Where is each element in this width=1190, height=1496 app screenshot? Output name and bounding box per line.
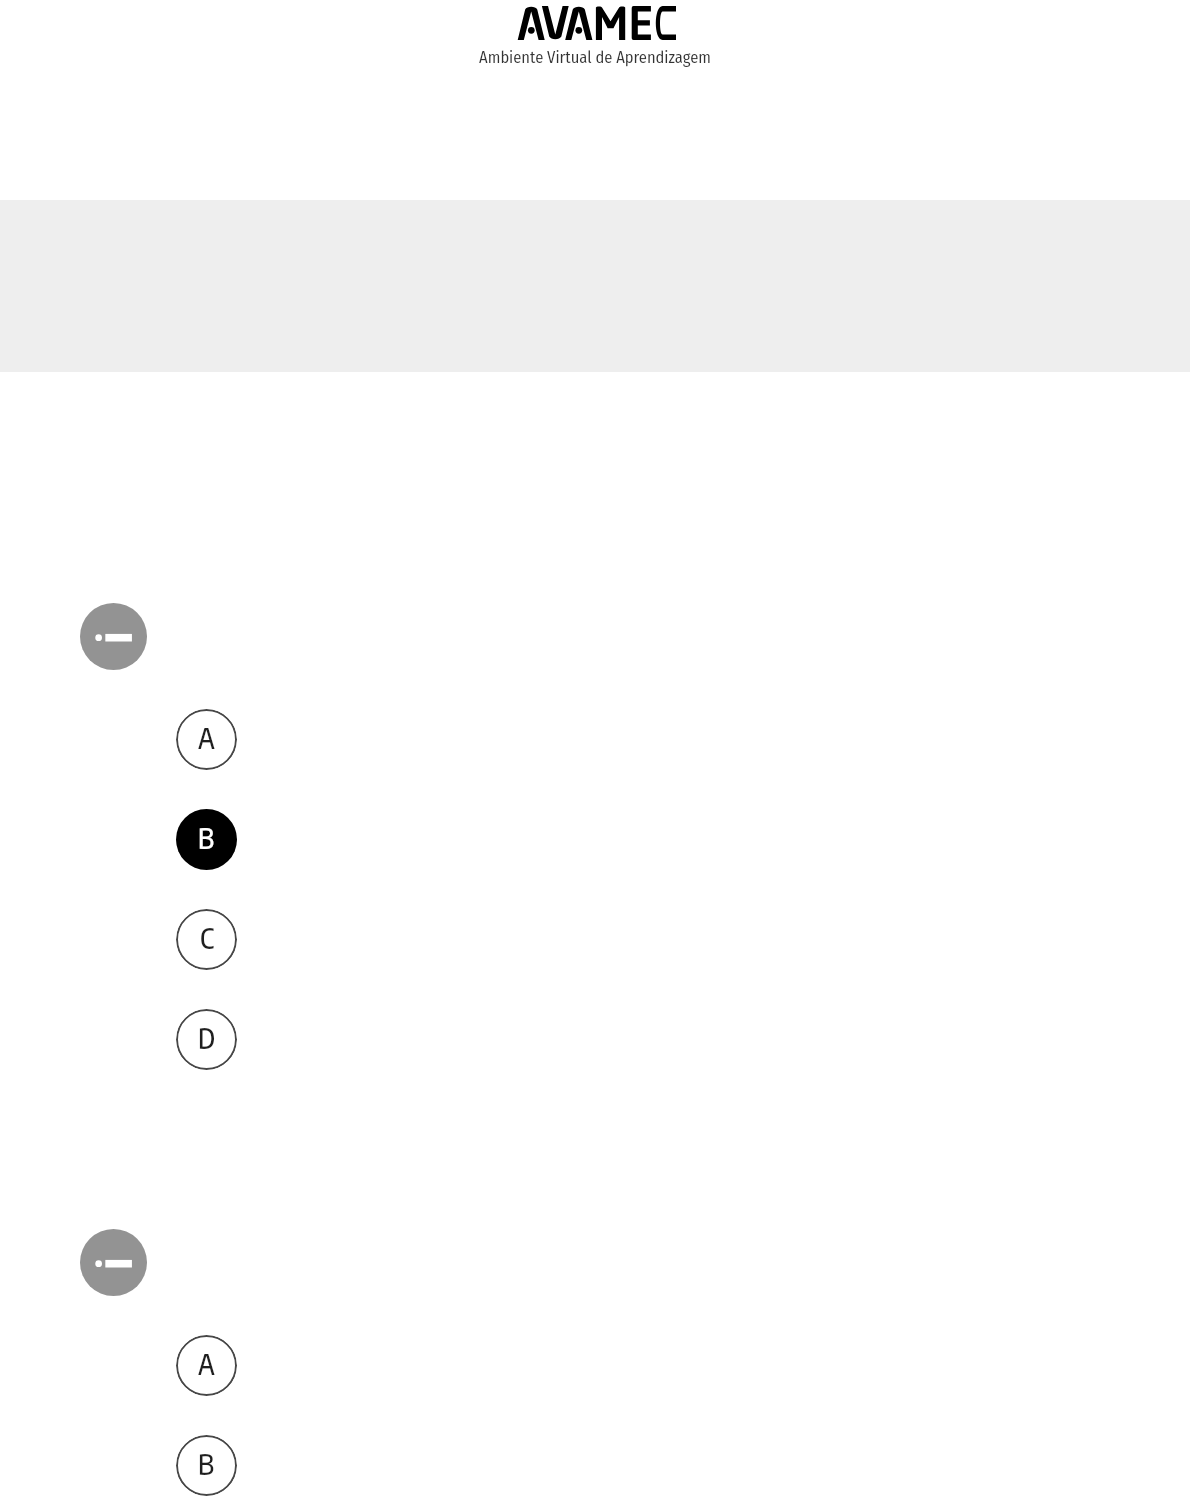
button[interactable]: B xyxy=(176,809,237,870)
button[interactable]: B xyxy=(176,1435,237,1496)
staticText: Ambiente Virtual de Aprendizagem xyxy=(479,48,711,68)
staticText: D xyxy=(198,1020,216,1055)
button[interactable]: D xyxy=(176,1009,237,1070)
button[interactable]: C xyxy=(176,909,237,970)
staticText: B xyxy=(198,820,215,855)
button[interactable]: Question 2 xyxy=(80,1229,147,1296)
button[interactable]: AVAMEC home xyxy=(0,0,1190,82)
staticText: B xyxy=(198,1446,215,1481)
staticText: A xyxy=(198,720,215,755)
staticText: C xyxy=(200,920,214,955)
staticText: A xyxy=(198,1346,215,1381)
button[interactable]: A xyxy=(176,709,237,770)
button[interactable]: A xyxy=(176,1335,237,1396)
button[interactable]: Question 1 xyxy=(80,603,147,670)
